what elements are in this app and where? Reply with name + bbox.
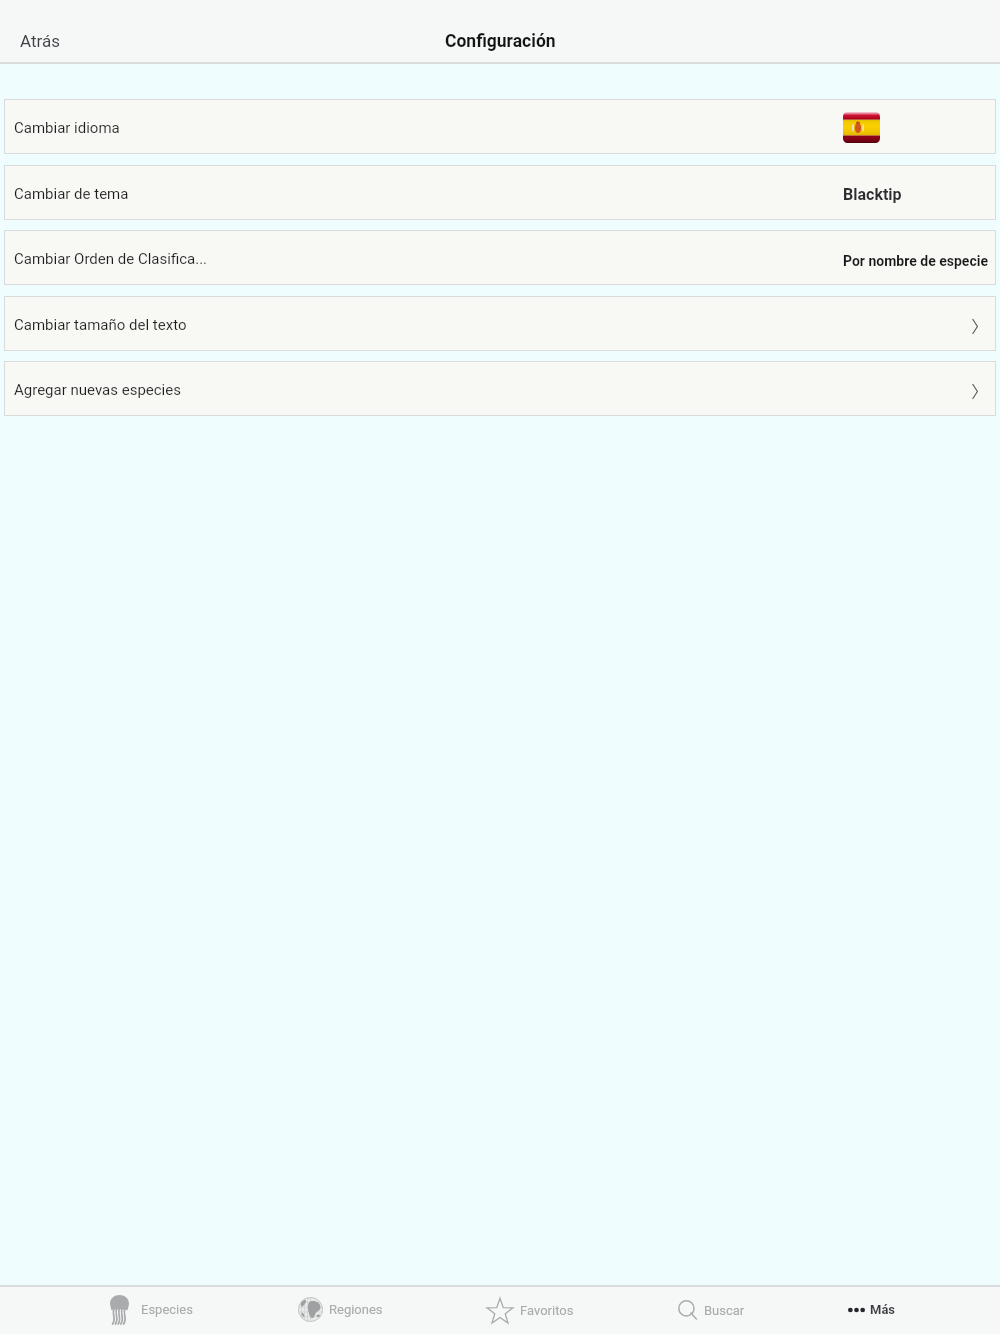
staticText: Regiones <box>329 1302 383 1317</box>
staticText: Configuración <box>445 31 556 52</box>
button[interactable]: Atrás <box>0 31 80 51</box>
staticText: Cambiar Orden de Clasifica... <box>14 250 208 268</box>
button[interactable]: Más <box>848 1295 896 1324</box>
staticText: Cambiar tamaño del texto <box>14 316 187 334</box>
button[interactable]: Especies <box>110 1288 193 1331</box>
button[interactable]: Buscar <box>678 1293 745 1327</box>
staticText: Por nombre de especie <box>843 253 989 269</box>
button[interactable]: Cambiar de tema <box>4 165 996 220</box>
staticText: Atrás <box>20 31 60 51</box>
button[interactable]: Cambiar idioma <box>4 99 996 154</box>
button[interactable]: Favoritos <box>486 1290 574 1330</box>
button[interactable]: Regiones <box>298 1290 383 1329</box>
staticText: Favoritos <box>520 1303 574 1318</box>
staticText: Especies <box>141 1302 193 1317</box>
staticText: Buscar <box>704 1303 745 1318</box>
staticText: Cambiar de tema <box>14 185 129 203</box>
other: Español <box>843 112 880 143</box>
staticText: Blacktip <box>843 185 902 204</box>
staticText: Más <box>870 1302 896 1317</box>
other: Abrir <box>972 319 978 334</box>
button[interactable]: Cambiar Orden de Clasifica... <box>4 230 996 285</box>
other: Abrir <box>972 384 978 399</box>
staticText: Cambiar idioma <box>14 119 120 137</box>
button[interactable]: Cambiar tamaño del texto <box>4 296 996 351</box>
staticText: Agregar nuevas especies <box>14 381 181 399</box>
button[interactable]: Agregar nuevas especies <box>4 361 996 416</box>
